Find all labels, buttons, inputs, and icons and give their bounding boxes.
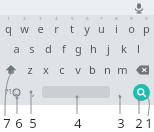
staticText: k xyxy=(121,41,127,56)
staticText: m xyxy=(117,62,128,77)
button[interactable]: . xyxy=(110,80,128,104)
staticText: 2 xyxy=(23,16,26,21)
button[interactable]: , xyxy=(24,80,42,104)
staticText: f xyxy=(62,41,66,56)
staticText: o xyxy=(128,21,135,36)
staticText: h xyxy=(90,41,97,56)
staticText: 4 xyxy=(74,114,82,132)
button[interactable]: Voice input xyxy=(132,1,146,15)
staticText: e xyxy=(37,21,44,36)
button[interactable]: v xyxy=(70,59,85,80)
staticText: n xyxy=(104,62,111,77)
staticText: q xyxy=(5,21,12,36)
staticText: 6 xyxy=(86,16,89,21)
staticText: 2 xyxy=(135,114,143,132)
staticText: . xyxy=(118,86,121,98)
button[interactable]: a xyxy=(8,38,24,59)
staticText: z xyxy=(27,62,33,77)
staticText: 0 xyxy=(145,16,148,21)
staticText: 7 xyxy=(100,16,103,21)
staticText: l xyxy=(137,41,140,56)
staticText: 9 xyxy=(130,16,133,21)
button[interactable]: m xyxy=(115,59,130,80)
button[interactable]: 4 xyxy=(48,16,64,38)
button[interactable]: 3 xyxy=(32,16,48,38)
staticText: a xyxy=(13,41,20,56)
button[interactable]: Backspace xyxy=(130,59,154,80)
staticText: i xyxy=(115,21,118,36)
button[interactable]: j xyxy=(101,38,116,59)
button[interactable]: Space xyxy=(42,86,110,98)
button[interactable]: k xyxy=(116,38,131,59)
staticText: 6 xyxy=(15,114,23,132)
button[interactable]: h xyxy=(86,38,101,59)
button[interactable]: 6 xyxy=(79,16,94,38)
button[interactable]: 1 xyxy=(0,16,16,38)
button[interactable]: 8 xyxy=(109,16,124,38)
staticText: u xyxy=(98,21,105,36)
staticText: x xyxy=(43,62,49,77)
staticText: j xyxy=(107,41,110,56)
staticText: g xyxy=(75,41,82,56)
button[interactable]: 9 xyxy=(124,16,139,38)
staticText: 3 xyxy=(39,16,42,21)
button[interactable]: n xyxy=(100,59,115,80)
staticText: t xyxy=(70,21,74,36)
button[interactable]: c xyxy=(54,59,70,80)
button[interactable]: x xyxy=(38,59,54,80)
staticText: y xyxy=(84,21,90,36)
staticText: 7 xyxy=(3,114,11,132)
button[interactable]: 2 xyxy=(16,16,32,38)
staticText: 3 xyxy=(117,114,125,132)
staticText: ?1 xyxy=(5,87,13,97)
button[interactable]: l xyxy=(131,38,146,59)
staticText: v xyxy=(75,62,81,77)
button[interactable]: ?1 xyxy=(0,80,24,104)
button[interactable]: f xyxy=(56,38,71,59)
staticText: b xyxy=(89,62,96,77)
staticText: p xyxy=(143,21,150,36)
staticText: 1 xyxy=(145,114,153,132)
button[interactable]: z xyxy=(22,59,38,80)
staticText: 8 xyxy=(115,16,118,21)
button[interactable]: 7 xyxy=(94,16,109,38)
staticText: s xyxy=(29,41,35,56)
button[interactable]: g xyxy=(71,38,86,59)
staticText: 4 xyxy=(55,16,58,21)
button[interactable]: Shift xyxy=(0,59,22,80)
staticText: w xyxy=(20,21,29,36)
button[interactable]: d xyxy=(40,38,56,59)
staticText: c xyxy=(59,62,65,77)
button[interactable]: 5 xyxy=(64,16,79,38)
staticText: 5 xyxy=(29,114,37,132)
button[interactable]: 0 xyxy=(139,16,154,38)
staticText: 5 xyxy=(71,16,74,21)
button[interactable]: Search xyxy=(128,80,154,104)
staticText: , xyxy=(32,86,35,98)
staticText: r xyxy=(54,21,59,36)
button[interactable]: s xyxy=(24,38,40,59)
staticText: d xyxy=(45,41,52,56)
staticText: 1 xyxy=(7,16,10,21)
button[interactable]: b xyxy=(85,59,100,80)
